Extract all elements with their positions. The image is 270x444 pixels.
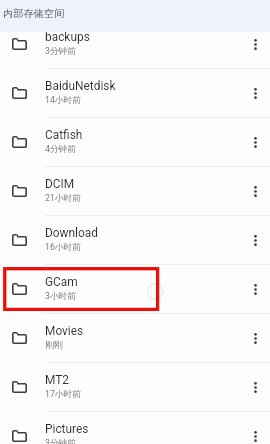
- staticText: 16小时前: [45, 242, 81, 253]
- button[interactable]: GCam: [0, 265, 270, 314]
- staticText: 3分钟前: [45, 46, 76, 57]
- button[interactable]: More options: [242, 363, 268, 412]
- staticText: Download: [45, 226, 98, 240]
- button[interactable]: More options: [242, 167, 268, 216]
- staticText: MT2: [45, 373, 69, 387]
- staticText: GCam: [45, 275, 78, 289]
- staticText: backups: [45, 30, 90, 44]
- button[interactable]: More options: [242, 216, 268, 265]
- staticText: 4分钟前: [45, 144, 76, 155]
- button[interactable]: backups: [0, 20, 270, 69]
- button[interactable]: More options: [242, 69, 268, 118]
- button[interactable]: Pictures: [0, 412, 270, 444]
- staticText: Pictures: [45, 422, 89, 436]
- button[interactable]: Download: [0, 216, 270, 265]
- staticText: 刚刚: [45, 340, 63, 351]
- staticText: 3小时前: [45, 291, 76, 302]
- staticText: 内部存储空间: [3, 7, 65, 20]
- staticText: 3分钟前: [45, 438, 76, 444]
- button[interactable]: More options: [242, 20, 268, 69]
- button[interactable]: More options: [242, 412, 268, 444]
- staticText: Movies: [45, 324, 84, 338]
- button[interactable]: Movies: [0, 314, 270, 363]
- button[interactable]: More options: [242, 265, 268, 314]
- staticText: Catfish: [45, 128, 83, 142]
- button[interactable]: More options: [242, 314, 268, 363]
- staticText: 17小时前: [45, 389, 81, 400]
- staticText: DCIM: [45, 177, 75, 191]
- button[interactable]: DCIM: [0, 167, 270, 216]
- button[interactable]: MT2: [0, 363, 270, 412]
- button[interactable]: Catfish: [0, 118, 270, 167]
- staticText: BaiduNetdisk: [45, 79, 116, 93]
- button[interactable]: BaiduNetdisk: [0, 69, 270, 118]
- staticText: 14小时前: [45, 95, 81, 106]
- staticText: 21小时前: [45, 193, 81, 204]
- button[interactable]: More options: [242, 118, 268, 167]
